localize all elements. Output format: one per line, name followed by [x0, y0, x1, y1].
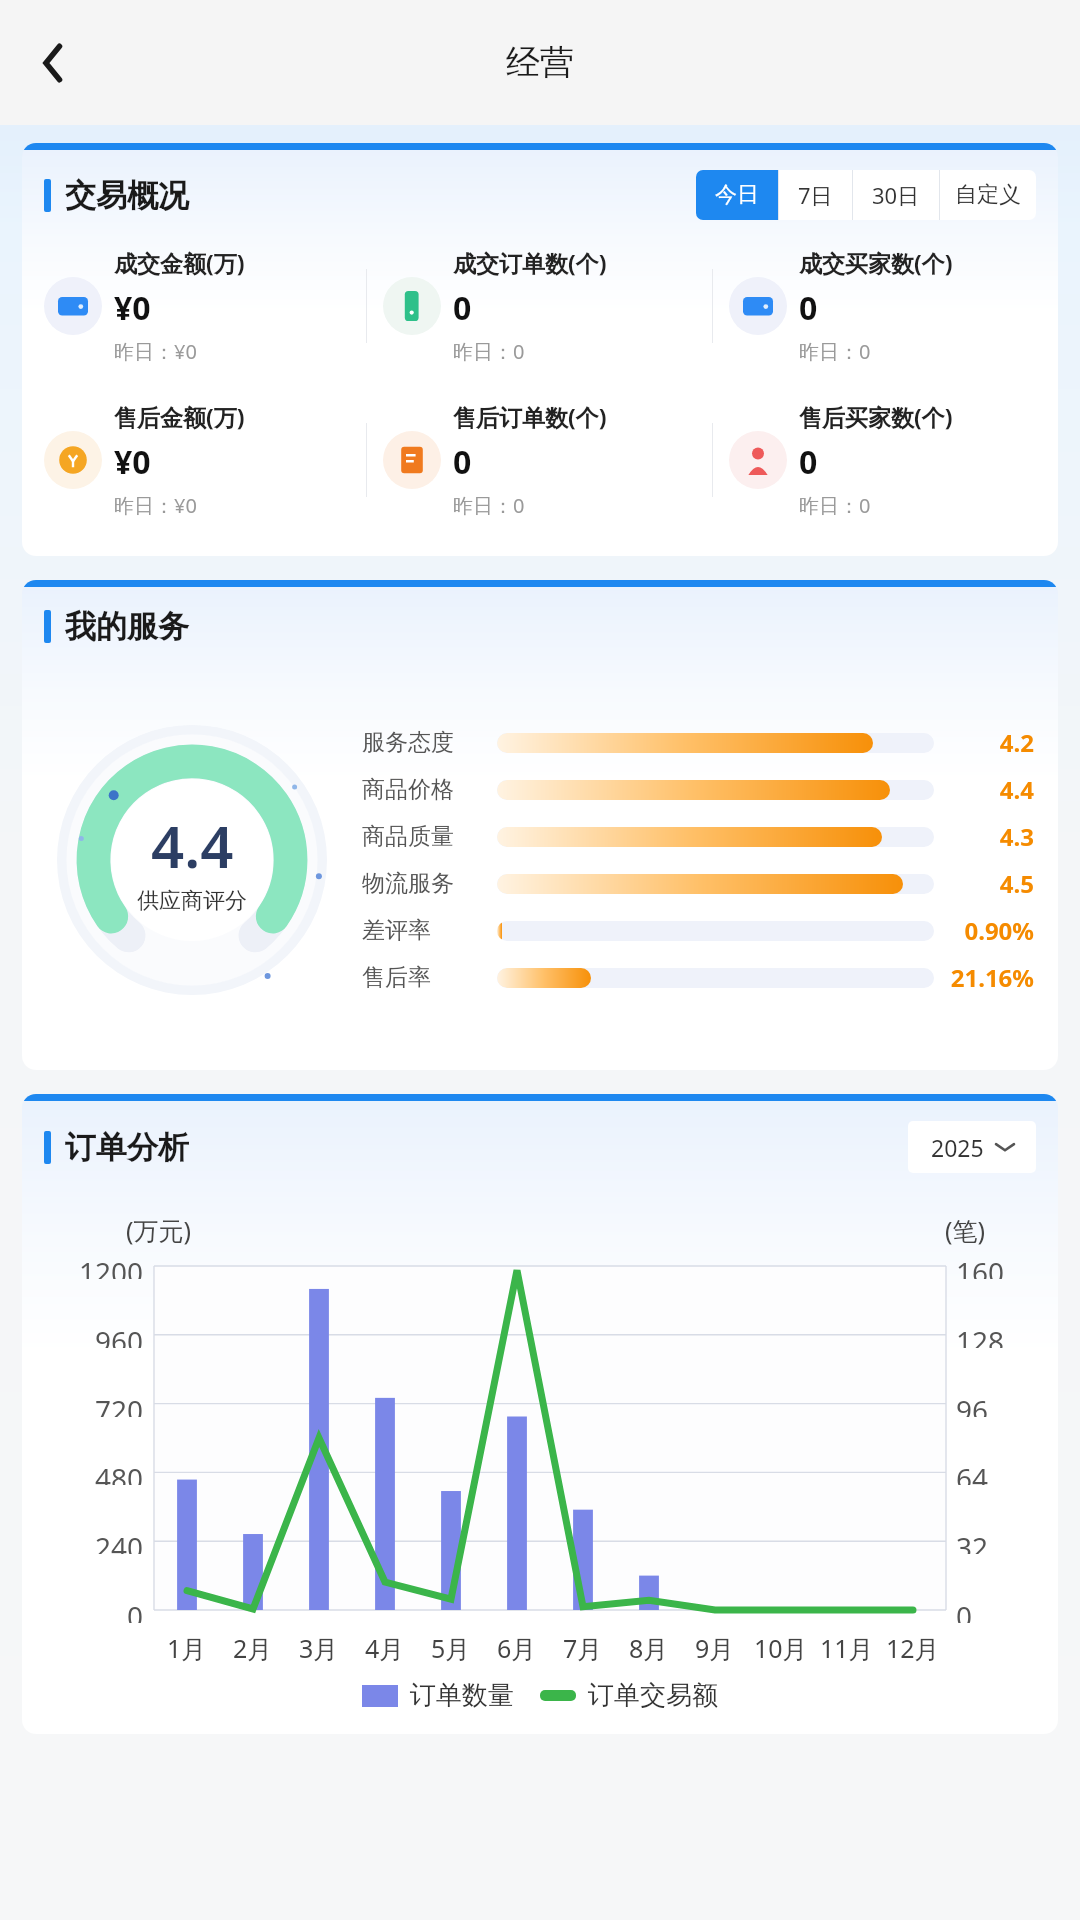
staticText: 240: [95, 1528, 144, 1554]
button[interactable]: 成交金额(万): [22, 246, 366, 366]
staticText: 4.5: [948, 867, 1034, 900]
staticText: 成交订单数(个): [453, 247, 607, 278]
staticText: 21.16%: [948, 961, 1034, 994]
staticText: 成交金额(万): [114, 247, 245, 278]
staticText: 0: [799, 440, 818, 484]
staticText: 昨日：¥0: [114, 492, 197, 519]
staticText: 720: [95, 1391, 144, 1417]
staticText: 3月: [299, 1631, 339, 1665]
button[interactable]: 30日: [853, 170, 939, 220]
staticText: 经营: [506, 41, 574, 84]
staticText: 2025: [931, 1132, 984, 1163]
staticText: 昨日：0: [799, 492, 871, 519]
staticText: 5月: [431, 1631, 471, 1665]
staticText: 0: [956, 1597, 973, 1623]
staticText: 订单数量: [410, 1679, 514, 1712]
staticText: 4.3: [948, 820, 1034, 853]
staticText: 商品质量: [362, 822, 487, 851]
staticText: 0.90%: [948, 914, 1034, 947]
staticText: 160: [956, 1253, 1005, 1279]
staticText: 昨日：0: [799, 338, 871, 365]
staticText: 32: [956, 1528, 989, 1554]
staticText: 1200: [79, 1253, 144, 1279]
staticText: 12月: [886, 1631, 940, 1665]
staticText: 64: [956, 1459, 989, 1485]
button[interactable]: 2025: [908, 1121, 1036, 1173]
staticText: 售后订单数(个): [453, 401, 607, 432]
button[interactable]: 商品价格: [362, 766, 1034, 813]
staticText: 4.2: [948, 726, 1034, 759]
staticText: 480: [95, 1459, 144, 1485]
staticText: 昨日：¥0: [114, 338, 197, 365]
staticText: 售后买家数(个): [799, 401, 953, 432]
staticText: 7日: [798, 180, 833, 210]
staticText: 9月: [695, 1631, 735, 1665]
staticText: 商品价格: [362, 775, 487, 804]
staticText: ¥0: [114, 440, 151, 484]
staticText: 2月: [233, 1631, 273, 1665]
button[interactable]: 商品质量: [362, 813, 1034, 860]
staticText: 0: [453, 440, 472, 484]
staticText: 4月: [365, 1631, 405, 1665]
button[interactable]: 7日: [779, 170, 852, 220]
staticText: 今日: [715, 181, 759, 209]
staticText: 服务态度: [362, 728, 487, 757]
button[interactable]: 差评率: [362, 907, 1034, 954]
button[interactable]: 成交订单数(个): [367, 246, 712, 366]
staticText: 自定义: [955, 181, 1021, 209]
staticText: (笔): [945, 1213, 986, 1247]
button[interactable]: 售后买家数(个): [713, 400, 1058, 520]
staticText: 128: [956, 1322, 1005, 1348]
button[interactable]: 售后订单数(个): [367, 400, 712, 520]
button[interactable]: 自定义: [940, 170, 1036, 220]
staticText: 交易概况: [65, 176, 189, 215]
staticText: 供应商评分: [137, 887, 247, 915]
button[interactable]: 物流服务: [362, 860, 1034, 907]
button[interactable]: 服务态度: [362, 719, 1034, 766]
staticText: (万元): [126, 1213, 192, 1247]
staticText: 售后率: [362, 963, 487, 992]
staticText: 售后金额(万): [114, 401, 245, 432]
staticText: ¥0: [114, 286, 151, 330]
staticText: 0: [453, 286, 472, 330]
staticText: 960: [95, 1322, 144, 1348]
staticText: 8月: [629, 1631, 669, 1665]
staticText: 订单交易额: [588, 1679, 718, 1712]
staticText: 4.4: [948, 773, 1034, 806]
staticText: 10月: [754, 1631, 808, 1665]
staticText: 我的服务: [65, 607, 189, 646]
button[interactable]: Back: [18, 32, 80, 94]
staticText: 昨日：0: [453, 492, 525, 519]
staticText: 订单分析: [65, 1128, 189, 1167]
button[interactable]: 售后率: [362, 954, 1034, 1001]
staticText: 6月: [497, 1631, 537, 1665]
staticText: 昨日：0: [453, 338, 525, 365]
button[interactable]: 售后金额(万): [22, 400, 366, 520]
staticText: 成交买家数(个): [799, 247, 953, 278]
button[interactable]: 今日: [696, 170, 778, 220]
staticText: 7月: [563, 1631, 603, 1665]
button[interactable]: 成交买家数(个): [713, 246, 1058, 366]
staticText: 0: [799, 286, 818, 330]
staticText: 96: [956, 1391, 989, 1417]
staticText: 物流服务: [362, 869, 487, 898]
staticText: 0: [127, 1597, 144, 1623]
staticText: 30日: [872, 180, 920, 210]
staticText: 差评率: [362, 916, 487, 945]
staticText: 1月: [167, 1631, 207, 1665]
staticText: 11月: [820, 1631, 874, 1665]
staticText: 4.4: [151, 806, 234, 885]
